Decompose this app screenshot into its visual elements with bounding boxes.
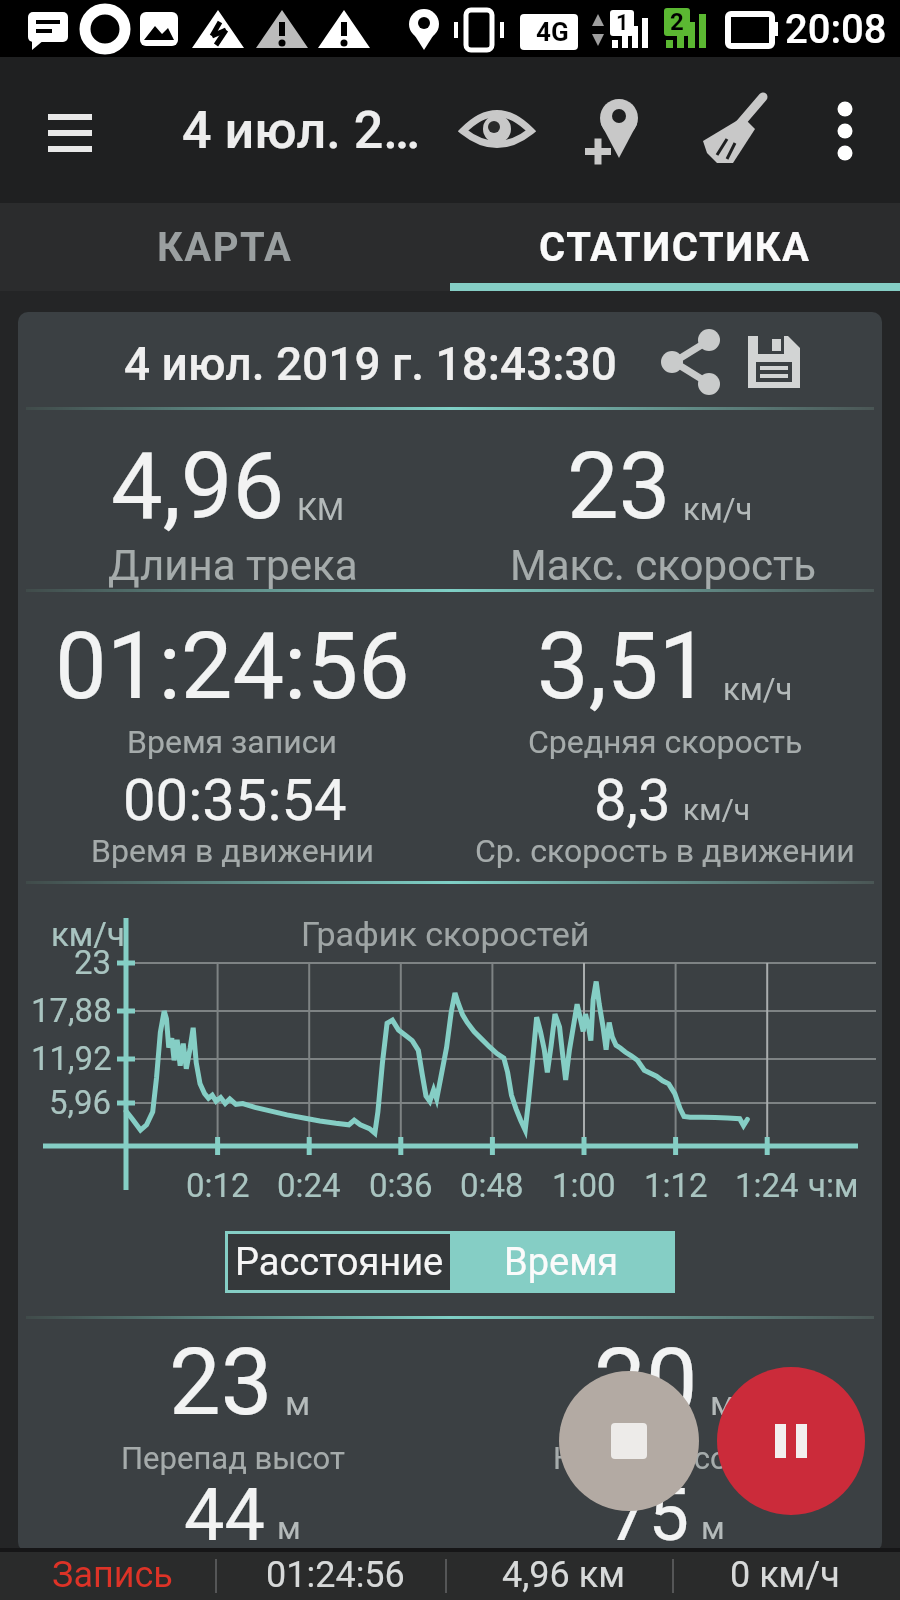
staticText: 1:00 bbox=[552, 1166, 616, 1205]
staticText: Перепад высот bbox=[121, 1440, 345, 1476]
staticText: График скоростей bbox=[301, 914, 590, 954]
staticText: 01:24:56 bbox=[266, 1554, 405, 1596]
staticText: Запись bbox=[52, 1554, 173, 1596]
staticText: Набор высоты bbox=[553, 1440, 767, 1476]
button[interactable]: 0 км/ч bbox=[675, 1552, 895, 1598]
button[interactable] bbox=[567, 86, 657, 176]
staticText: м bbox=[285, 1383, 311, 1423]
staticText: Время записи bbox=[127, 723, 337, 761]
staticText: 1 bbox=[616, 10, 629, 36]
button[interactable] bbox=[34, 94, 106, 166]
staticText: 44 bbox=[184, 1473, 265, 1553]
staticText: 4 июл. 2019 г. 18:43:30 bbox=[124, 337, 617, 391]
staticText: км/ч bbox=[723, 671, 793, 707]
staticText: Время в движении bbox=[91, 832, 374, 870]
staticText: 3,51 bbox=[537, 613, 711, 721]
button[interactable] bbox=[736, 324, 812, 400]
staticText: 01:24:56 bbox=[55, 613, 410, 721]
staticText: 5,96 bbox=[49, 1083, 112, 1122]
button[interactable]: 4 июл. 2019 г. 18:43:30 bbox=[90, 329, 650, 399]
staticText: Макс. скорость bbox=[510, 541, 817, 590]
staticText: км/ч bbox=[683, 792, 751, 827]
staticText: Длина трека bbox=[108, 541, 358, 590]
staticText: 4,96 bbox=[111, 433, 285, 541]
staticText: Ср. скорость в движении bbox=[475, 832, 855, 870]
button[interactable] bbox=[452, 86, 542, 176]
staticText: 17,88 bbox=[31, 991, 112, 1030]
staticText: 0:36 bbox=[369, 1166, 433, 1205]
staticText: 0:48 bbox=[460, 1166, 524, 1205]
staticText: 0 км/ч bbox=[730, 1554, 840, 1596]
staticText: 00:35:54 bbox=[123, 766, 347, 834]
staticText: 20:08 bbox=[785, 6, 887, 53]
staticText: 4 июл. 2… bbox=[182, 100, 421, 161]
staticText: КМ bbox=[297, 491, 344, 527]
staticText: км/ч bbox=[51, 915, 125, 954]
button[interactable]: Время bbox=[450, 1234, 672, 1290]
button[interactable] bbox=[717, 1367, 865, 1515]
staticText: 8,3 bbox=[594, 766, 671, 834]
button[interactable] bbox=[810, 83, 880, 179]
button[interactable]: Расстояние bbox=[228, 1234, 450, 1290]
staticText: м bbox=[277, 1509, 301, 1547]
staticText: Расстояние bbox=[235, 1240, 444, 1285]
staticText: 75 bbox=[608, 1473, 689, 1553]
staticText: 0:24 bbox=[277, 1166, 341, 1205]
button[interactable]: 01:24:56 bbox=[225, 1552, 445, 1598]
button[interactable]: КАРТА bbox=[0, 203, 450, 291]
button[interactable]: 4 июл. 2… bbox=[182, 95, 421, 165]
staticText: КАРТА bbox=[157, 224, 293, 271]
staticText: ч:м bbox=[808, 1166, 859, 1205]
staticText: Средняя скорость bbox=[528, 723, 803, 761]
staticText: 2 bbox=[670, 8, 684, 36]
button[interactable]: Запись bbox=[7, 1552, 217, 1598]
button[interactable] bbox=[687, 81, 783, 177]
staticText: 23 bbox=[74, 943, 112, 982]
staticText: СТАТИСТИКА bbox=[539, 224, 811, 271]
staticText: км/ч bbox=[683, 491, 753, 527]
button[interactable] bbox=[652, 324, 728, 400]
button[interactable]: СТАТИСТИКА bbox=[450, 203, 900, 291]
staticText: 4G bbox=[536, 17, 569, 47]
staticText: 23 bbox=[169, 1329, 273, 1437]
staticText: Время bbox=[504, 1240, 619, 1285]
staticText: 20 bbox=[594, 1329, 698, 1437]
staticText: 1:24 bbox=[735, 1166, 799, 1205]
button[interactable]: 4,96 км bbox=[453, 1552, 673, 1598]
staticText: 23 bbox=[567, 433, 671, 541]
staticText: м bbox=[701, 1509, 725, 1547]
staticText: м bbox=[710, 1383, 736, 1423]
button[interactable] bbox=[559, 1371, 699, 1511]
staticText: 4,96 км bbox=[502, 1554, 625, 1596]
staticText: 1:12 bbox=[644, 1166, 708, 1205]
staticText: 0:12 bbox=[186, 1166, 250, 1205]
staticText: 11,92 bbox=[31, 1039, 112, 1078]
